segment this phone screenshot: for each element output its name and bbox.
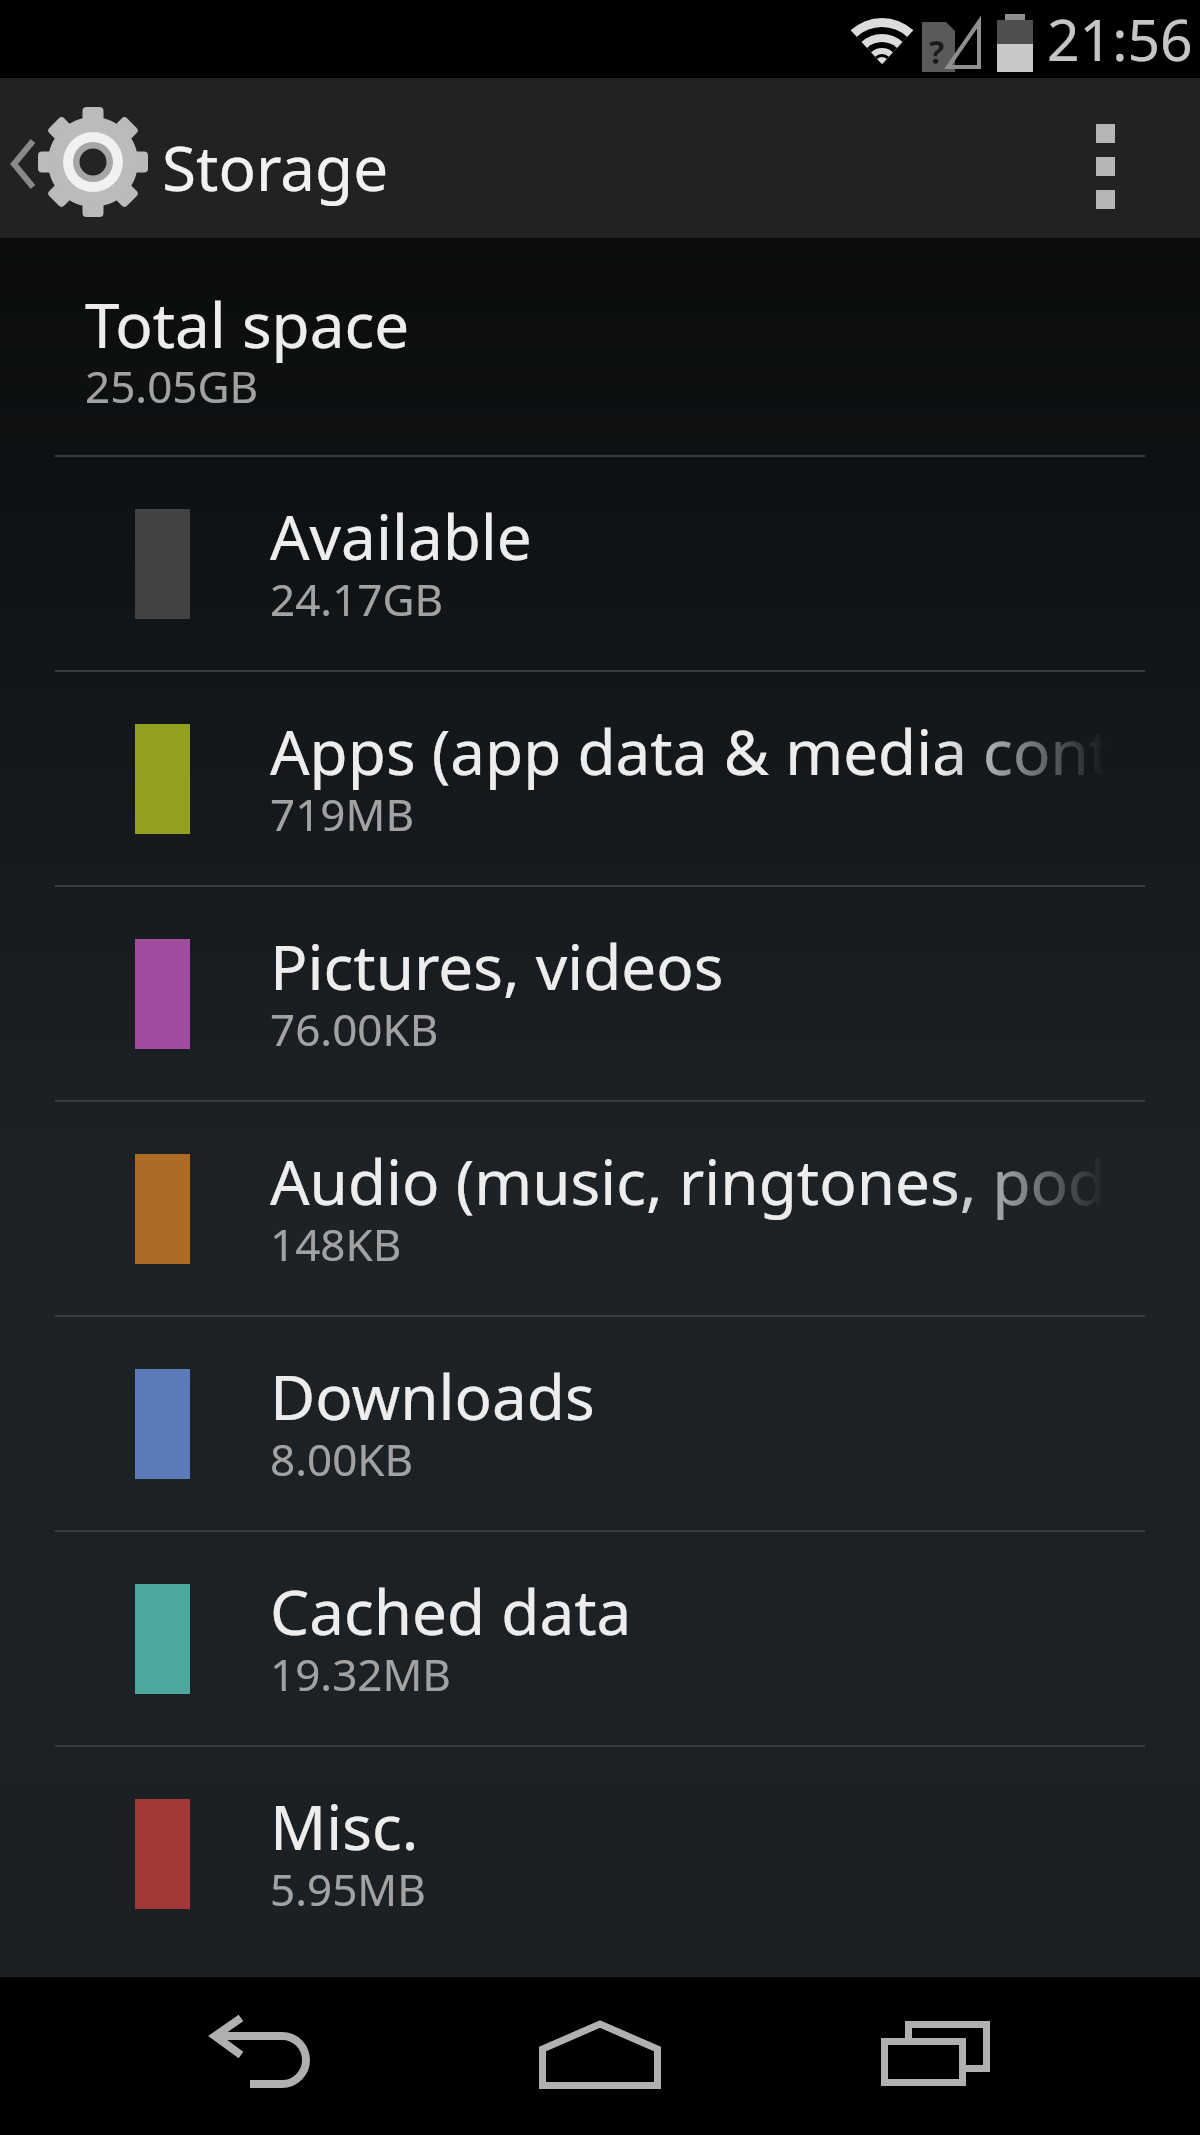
button[interactable] bbox=[0, 78, 160, 238]
button[interactable]: Apps (app data & media content) bbox=[0, 672, 1200, 885]
staticText: 76.00KB bbox=[270, 999, 439, 1059]
staticText: ? bbox=[929, 30, 945, 74]
button[interactable]: Pictures, videos bbox=[0, 887, 1200, 1100]
button[interactable]: Available bbox=[0, 457, 1200, 670]
staticText: 21:56 bbox=[1047, 0, 1193, 78]
button[interactable]: Cached data bbox=[0, 1532, 1200, 1745]
staticText: Cached data bbox=[270, 1569, 632, 1653]
staticText: Available bbox=[270, 494, 532, 578]
staticText: 5.95MB bbox=[270, 1859, 426, 1919]
staticText: Pictures, videos bbox=[270, 924, 724, 1008]
staticText: Storage bbox=[162, 125, 389, 209]
button[interactable]: Downloads bbox=[0, 1317, 1200, 1530]
button[interactable] bbox=[1055, 78, 1155, 238]
staticText: 8.00KB bbox=[270, 1429, 414, 1489]
button[interactable] bbox=[510, 1977, 690, 2135]
button[interactable]: Audio (music, ringtones, podcasts, a bbox=[0, 1102, 1200, 1315]
button[interactable]: Total space bbox=[85, 282, 1200, 455]
staticText: Total space bbox=[85, 282, 410, 366]
button[interactable] bbox=[175, 1977, 355, 2135]
staticText: Downloads bbox=[270, 1354, 595, 1438]
staticText: 19.32MB bbox=[270, 1644, 451, 1704]
button[interactable]: Misc. bbox=[0, 1747, 1200, 1960]
staticText: 148KB bbox=[270, 1214, 402, 1274]
staticText: 25.05GB bbox=[85, 356, 259, 416]
button[interactable] bbox=[845, 1977, 1025, 2135]
staticText: Apps (app data & media content) bbox=[270, 709, 1150, 793]
staticText: 719MB bbox=[270, 784, 415, 844]
staticText: Misc. bbox=[270, 1784, 419, 1868]
staticText: 24.17GB bbox=[270, 569, 444, 629]
staticText: Audio (music, ringtones, podcasts, a bbox=[270, 1139, 1150, 1223]
